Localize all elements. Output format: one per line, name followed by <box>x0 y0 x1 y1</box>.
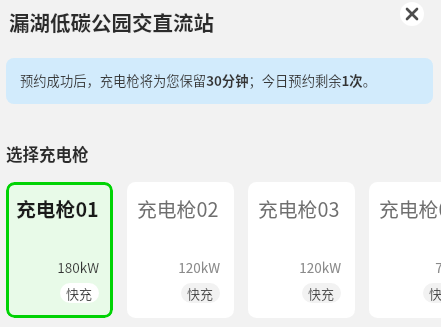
staticText: 120kW <box>127 257 220 277</box>
button[interactable]: Close <box>400 2 424 26</box>
button[interactable]: 充电枪04 <box>369 182 441 318</box>
button[interactable]: 充电枪01 <box>6 182 113 318</box>
staticText: 120kW <box>248 257 341 277</box>
staticText: 充电枪01 <box>16 194 99 223</box>
staticText: 预约成功后，充电枪将为您保留30分钟；今日预约剩余1次。 <box>20 71 376 90</box>
staticText: 快充 <box>187 284 214 303</box>
button[interactable]: 充电枪03 <box>248 182 355 318</box>
staticText: 选择充电枪 <box>6 142 89 166</box>
staticText: 快充 <box>429 284 441 303</box>
staticText: 快充 <box>66 284 93 303</box>
staticText: 180kW <box>6 257 99 277</box>
staticText: 充电枪04 <box>379 194 441 223</box>
staticText: 充电枪02 <box>137 194 219 223</box>
staticText: 7kW <box>369 257 441 277</box>
staticText: 漏湖低碳公园交直流站 <box>9 7 214 37</box>
staticText: 充电枪03 <box>258 194 340 223</box>
button[interactable]: 充电枪02 <box>127 182 234 318</box>
staticText: 快充 <box>308 284 335 303</box>
